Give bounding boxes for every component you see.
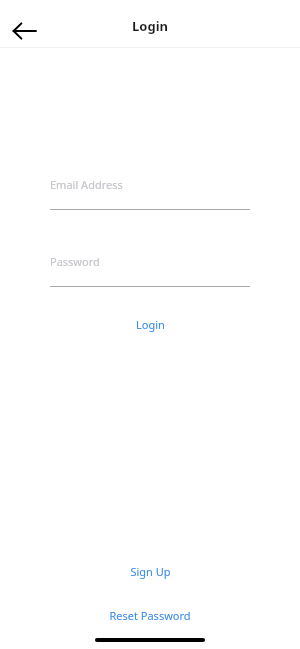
staticText: Sign Up	[130, 564, 171, 579]
button[interactable]: Back	[6, 16, 42, 46]
button[interactable]: Sign Up	[0, 559, 300, 583]
staticText: Login	[136, 317, 165, 332]
staticText: Password	[50, 254, 100, 269]
staticText: Reset Password	[109, 608, 191, 623]
button[interactable]: Reset Password	[0, 603, 300, 627]
staticText: Email Address	[50, 177, 123, 192]
button[interactable]: Password field	[50, 267, 250, 287]
button[interactable]: Login	[0, 312, 300, 336]
button[interactable]: Email Address field	[50, 190, 250, 210]
staticText: Login	[132, 17, 168, 35]
